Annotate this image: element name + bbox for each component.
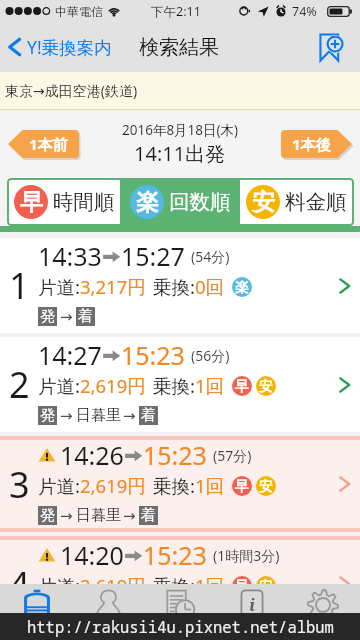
staticText: 楽 <box>235 279 249 296</box>
staticText: (1時間3分) <box>213 546 280 565</box>
button[interactable]: Top <box>2 584 72 628</box>
staticText: 14:11出発 <box>134 140 226 167</box>
button[interactable]: 3 <box>0 436 360 532</box>
staticText: 1回 <box>195 573 225 598</box>
button[interactable]: Settings <box>288 584 358 628</box>
button[interactable]: 早 <box>7 178 122 226</box>
staticText: トップ <box>22 623 53 628</box>
staticText: Myメニュー <box>81 622 136 628</box>
staticText: 時刻表 <box>165 622 195 628</box>
staticText: 1回 <box>195 473 225 498</box>
staticText: 2016年8月18日(木) <box>122 121 239 139</box>
staticText: 乗換: <box>153 573 195 598</box>
staticText: 4 <box>9 560 30 609</box>
staticText: 乗換: <box>153 274 195 299</box>
staticText: 中華電信 <box>55 4 103 19</box>
staticText: 着 <box>141 606 156 625</box>
staticText: 片道: <box>38 274 80 299</box>
staticText: 74% <box>292 3 317 20</box>
staticText: 早 <box>20 188 43 217</box>
button[interactable]: Y!乗換案内 <box>4 24 114 70</box>
staticText: 回数順 <box>169 189 231 215</box>
staticText: 0回 <box>195 274 225 299</box>
staticText: 着 <box>141 506 156 525</box>
staticText: 運行情報 <box>232 622 272 628</box>
button[interactable]: 1本前 <box>8 130 79 158</box>
staticText: 乗換: <box>153 473 195 498</box>
staticText: → <box>123 607 136 624</box>
button[interactable]: 楽 <box>122 178 238 226</box>
staticText: 1本前 <box>29 134 68 154</box>
staticText: 15:23 <box>143 438 207 472</box>
staticText: i <box>249 593 256 616</box>
staticText: 2,619円 <box>80 373 146 398</box>
staticText: 1回 <box>195 373 225 398</box>
button[interactable]: 東京→成田空港(鉄道) <box>0 72 360 109</box>
staticText: 乗換: <box>153 373 195 398</box>
staticText: 片道: <box>38 573 80 598</box>
staticText: 日暮里 <box>76 406 121 425</box>
staticText: 発 <box>40 506 55 525</box>
button[interactable]: 1本後 <box>281 130 352 158</box>
staticText: 日暮里 <box>76 506 121 525</box>
staticText: 早 <box>235 578 249 595</box>
staticText: 15:23 <box>121 338 185 372</box>
staticText: → <box>60 407 73 424</box>
staticText: 片道: <box>38 373 80 398</box>
staticText: 14:26 <box>60 438 124 472</box>
staticText: 安 <box>259 478 273 495</box>
staticText: 安 <box>252 188 275 217</box>
button[interactable]: 4 <box>0 536 360 632</box>
staticText: 下午2:11 <box>151 3 201 20</box>
staticText: 3,217円 <box>80 274 146 299</box>
staticText: 15:23 <box>143 538 207 572</box>
button[interactable]: 1 <box>0 238 360 333</box>
staticText: 早 <box>235 378 249 395</box>
staticText: → <box>60 308 73 325</box>
staticText: 発 <box>40 307 55 326</box>
staticText: 14:33 <box>38 239 102 273</box>
staticText: http://rakusii4u.pixnet.net/album <box>27 616 334 637</box>
staticText: → <box>123 407 136 424</box>
staticText: 安 <box>259 378 273 395</box>
staticText: 安 <box>259 578 273 595</box>
button[interactable]: 安 <box>238 178 354 226</box>
staticText: 検索結果 <box>139 35 219 60</box>
staticText: 14:27 <box>38 338 102 372</box>
button[interactable]: Add to bookmarks <box>311 22 351 72</box>
staticText: 片道: <box>38 473 80 498</box>
staticText: 15:27 <box>121 239 185 273</box>
staticText: (56分) <box>191 346 230 365</box>
staticText: 発 <box>40 406 55 425</box>
staticText: → <box>123 507 136 524</box>
staticText: 楽 <box>136 188 159 217</box>
staticText: (54分) <box>191 247 230 266</box>
staticText: 2,619円 <box>80 473 146 498</box>
staticText: 時間順 <box>53 189 115 215</box>
staticText: 料金順 <box>285 189 347 215</box>
staticText: 設定 <box>313 622 333 628</box>
button[interactable]: Information <box>217 584 287 628</box>
staticText: Y!乗換案内 <box>27 35 112 59</box>
staticText: 3 <box>9 460 30 509</box>
staticText: 日暮里 <box>76 606 121 625</box>
staticText: (57分) <box>213 446 252 465</box>
staticText: 2 <box>9 360 30 409</box>
staticText: 2,619円 <box>80 573 146 598</box>
staticText: → <box>60 607 73 624</box>
staticText: 1本後 <box>292 134 331 154</box>
staticText: 早 <box>235 478 249 495</box>
staticText: 着 <box>78 307 93 326</box>
staticText: → <box>60 507 73 524</box>
button[interactable]: My menu <box>73 584 143 628</box>
staticText: 東京→成田空港(鉄道) <box>5 81 138 100</box>
button[interactable]: 2 <box>0 337 360 432</box>
staticText: 着 <box>141 406 156 425</box>
staticText: 1 <box>9 261 30 310</box>
staticText: 発 <box>40 606 55 625</box>
staticText: 14:20 <box>60 538 124 572</box>
button[interactable]: Timetable <box>145 584 215 628</box>
